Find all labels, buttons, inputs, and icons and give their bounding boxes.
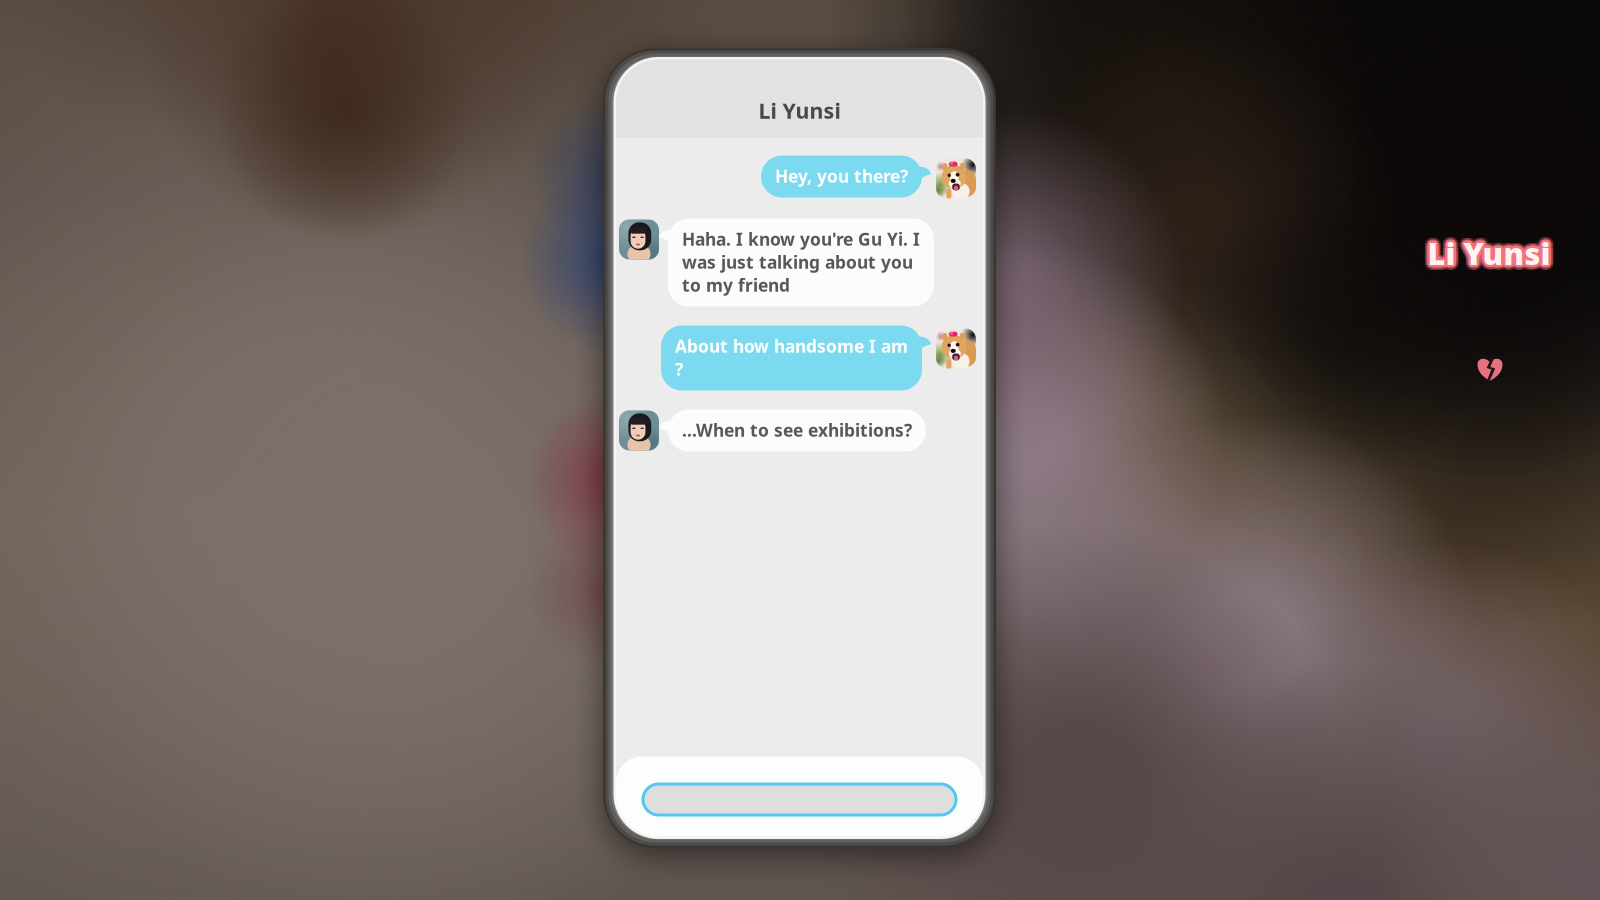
staticText: Li Yunsi [1430,234,1553,274]
staticText: Li Yunsi [1430,231,1553,272]
button[interactable]: ...When to see exhibitions? [616,59,926,451]
staticText: Li Yunsi [1425,233,1548,273]
button[interactable]: Haha. I know you're Gu Yi. I was just ta… [616,59,934,307]
button[interactable]: Hey, you there? [761,59,983,197]
staticText: Li Yunsi [1430,233,1553,273]
staticText: Li Yunsi [1432,235,1555,276]
staticText: Li Yunsi [1430,228,1553,269]
staticText: Li Yunsi [1429,235,1552,275]
staticText: Li Yunsi [1422,233,1545,273]
staticText: Li Yunsi [1423,230,1546,271]
staticText: Li Yunsi [1427,238,1550,278]
staticText: Li Yunsi [1429,231,1552,271]
staticText: Li Yunsi [1425,231,1548,272]
staticText: Li Yunsi [1432,233,1555,273]
button[interactable]: About how handsome I am ? [661,59,983,390]
staticText: Li Yunsi [1430,237,1553,278]
staticText: Li Yunsi [758,96,840,125]
staticText: Hey, you there? [775,164,908,187]
staticText: Li Yunsi [1423,235,1546,276]
staticText: Li Yunsi [1427,233,1550,273]
staticText: Li Yunsi [1427,235,1550,276]
staticText: ...When to see exhibitions? [682,418,912,441]
staticText: Haha. I know you're Gu Yi. I was just ta… [682,227,920,297]
button[interactable]: Message field [643,784,956,815]
staticText: Li Yunsi [1425,234,1548,274]
staticText: Li Yunsi [1427,230,1550,271]
staticText: Li Yunsi [1427,228,1550,268]
staticText: About how handsome I am ? [675,334,908,380]
staticText: Li Yunsi [1432,230,1555,271]
staticText: Li Yunsi [1426,235,1549,275]
staticText: Li Yunsi [1425,228,1548,269]
staticText: Li Yunsi [1426,231,1549,271]
staticText: Li Yunsi [1425,237,1548,278]
